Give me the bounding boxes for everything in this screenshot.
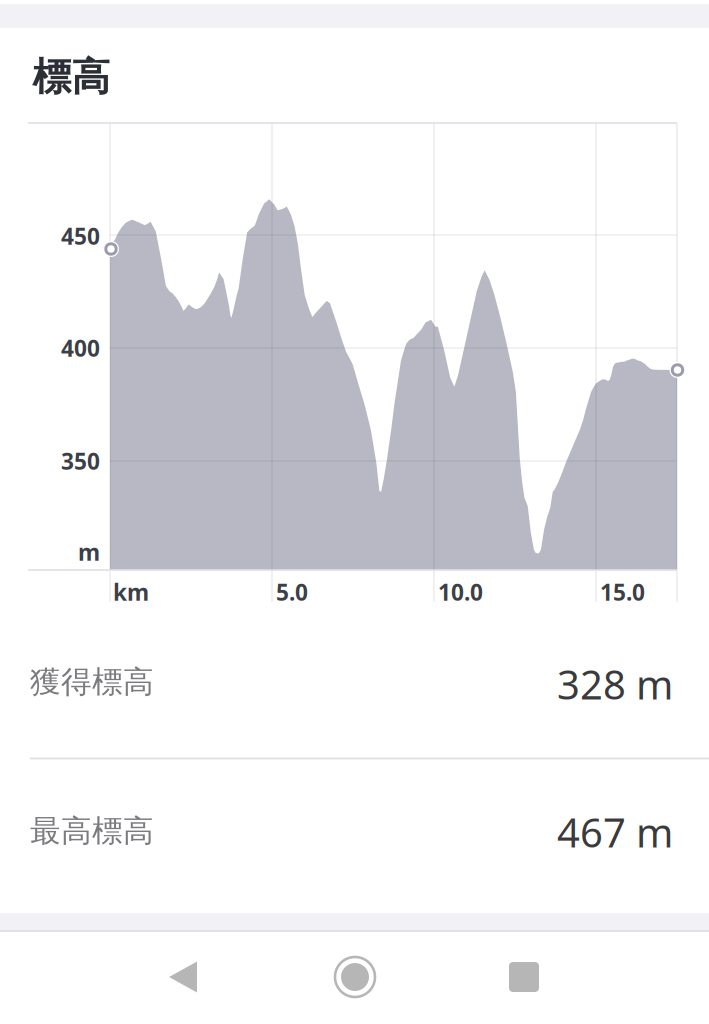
staticText: 450 bbox=[61, 221, 100, 251]
staticText: 350 bbox=[61, 446, 100, 476]
staticText: 467 m bbox=[557, 805, 673, 858]
staticText: km bbox=[113, 577, 149, 607]
staticText: 標高 bbox=[32, 53, 110, 101]
staticText: 15.0 bbox=[600, 577, 645, 607]
staticText: m bbox=[78, 537, 100, 567]
button[interactable]: Back bbox=[108, 931, 258, 1023]
button[interactable]: Recents bbox=[449, 931, 599, 1023]
staticText: 400 bbox=[61, 333, 100, 363]
staticText: 10.0 bbox=[438, 577, 483, 607]
staticText: 5.0 bbox=[276, 577, 308, 607]
staticText: 328 m bbox=[557, 657, 673, 710]
button[interactable]: Home bbox=[280, 931, 430, 1023]
staticText: 最高標高 bbox=[30, 812, 154, 850]
staticText: 獲得標高 bbox=[30, 663, 154, 701]
